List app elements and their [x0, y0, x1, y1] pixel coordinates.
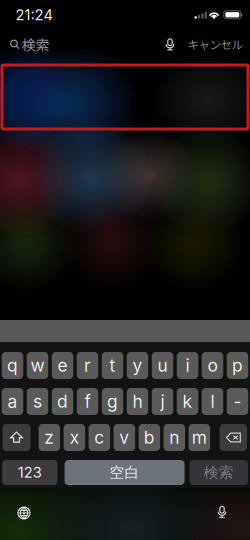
- button[interactable]: b: [139, 424, 160, 451]
- button[interactable]: t: [102, 352, 123, 379]
- button[interactable]: k: [177, 388, 198, 415]
- button[interactable]: i: [177, 352, 198, 379]
- button[interactable]: o: [202, 352, 223, 379]
- button[interactable]: 言語を切り替え: [10, 499, 38, 527]
- staticText: n: [169, 427, 179, 448]
- button[interactable]: u: [152, 352, 173, 379]
- button[interactable]: l: [202, 388, 223, 415]
- button[interactable]: x: [64, 424, 85, 451]
- button[interactable]: f: [77, 388, 98, 415]
- button[interactable]: キャンセル: [185, 33, 245, 55]
- button[interactable]: 音声入力: [208, 498, 236, 526]
- staticText: z: [44, 427, 54, 448]
- button[interactable]: 検索: [189, 460, 248, 485]
- button[interactable]: Shift: [2, 424, 30, 451]
- staticText: f: [84, 391, 90, 412]
- staticText: p: [232, 355, 243, 376]
- staticText: o: [207, 355, 217, 376]
- staticText: e: [57, 355, 67, 376]
- staticText: キャンセル: [187, 36, 242, 53]
- staticText: 検索: [204, 463, 234, 482]
- button[interactable]: v: [114, 424, 135, 451]
- button[interactable]: r: [77, 352, 98, 379]
- button[interactable]: m: [189, 424, 210, 451]
- button[interactable]: y: [127, 352, 148, 379]
- staticText: d: [57, 391, 68, 412]
- staticText: w: [30, 355, 44, 376]
- button[interactable]: w: [27, 352, 48, 379]
- button[interactable]: Delete: [220, 424, 247, 451]
- button[interactable]: 123: [2, 460, 57, 485]
- button[interactable]: e: [52, 352, 73, 379]
- staticText: q: [7, 355, 18, 376]
- staticText: a: [7, 391, 17, 412]
- button[interactable]: d: [52, 388, 73, 415]
- button[interactable]: 空白: [65, 460, 185, 485]
- staticText: t: [109, 355, 115, 376]
- staticText: m: [192, 427, 207, 448]
- button[interactable]: -: [227, 388, 248, 415]
- staticText: i: [185, 355, 189, 376]
- staticText: x: [70, 427, 79, 448]
- staticText: -: [233, 391, 241, 412]
- staticText: b: [144, 427, 155, 448]
- button[interactable]: s: [27, 388, 48, 415]
- button[interactable]: c: [89, 424, 110, 451]
- staticText: l: [210, 391, 214, 412]
- button[interactable]: n: [164, 424, 185, 451]
- staticText: v: [119, 427, 129, 448]
- staticText: j: [160, 391, 164, 412]
- button[interactable]: 音声入力: [159, 32, 181, 56]
- button[interactable]: z: [39, 424, 60, 451]
- button[interactable]: h: [127, 388, 148, 415]
- staticText: c: [94, 427, 104, 448]
- staticText: r: [84, 355, 91, 376]
- button[interactable]: q: [2, 352, 23, 379]
- staticText: k: [182, 391, 192, 412]
- staticText: 21:24: [15, 6, 52, 24]
- staticText: 検索: [21, 34, 49, 54]
- button[interactable]: a: [2, 388, 23, 415]
- staticText: 空白: [110, 463, 140, 482]
- button[interactable]: g: [102, 388, 123, 415]
- button[interactable]: p: [227, 352, 248, 379]
- staticText: 123: [18, 464, 42, 481]
- staticText: g: [107, 391, 118, 412]
- staticText: u: [157, 355, 167, 376]
- staticText: s: [33, 391, 42, 412]
- staticText: h: [132, 391, 142, 412]
- button[interactable]: j: [152, 388, 173, 415]
- staticText: y: [132, 355, 142, 376]
